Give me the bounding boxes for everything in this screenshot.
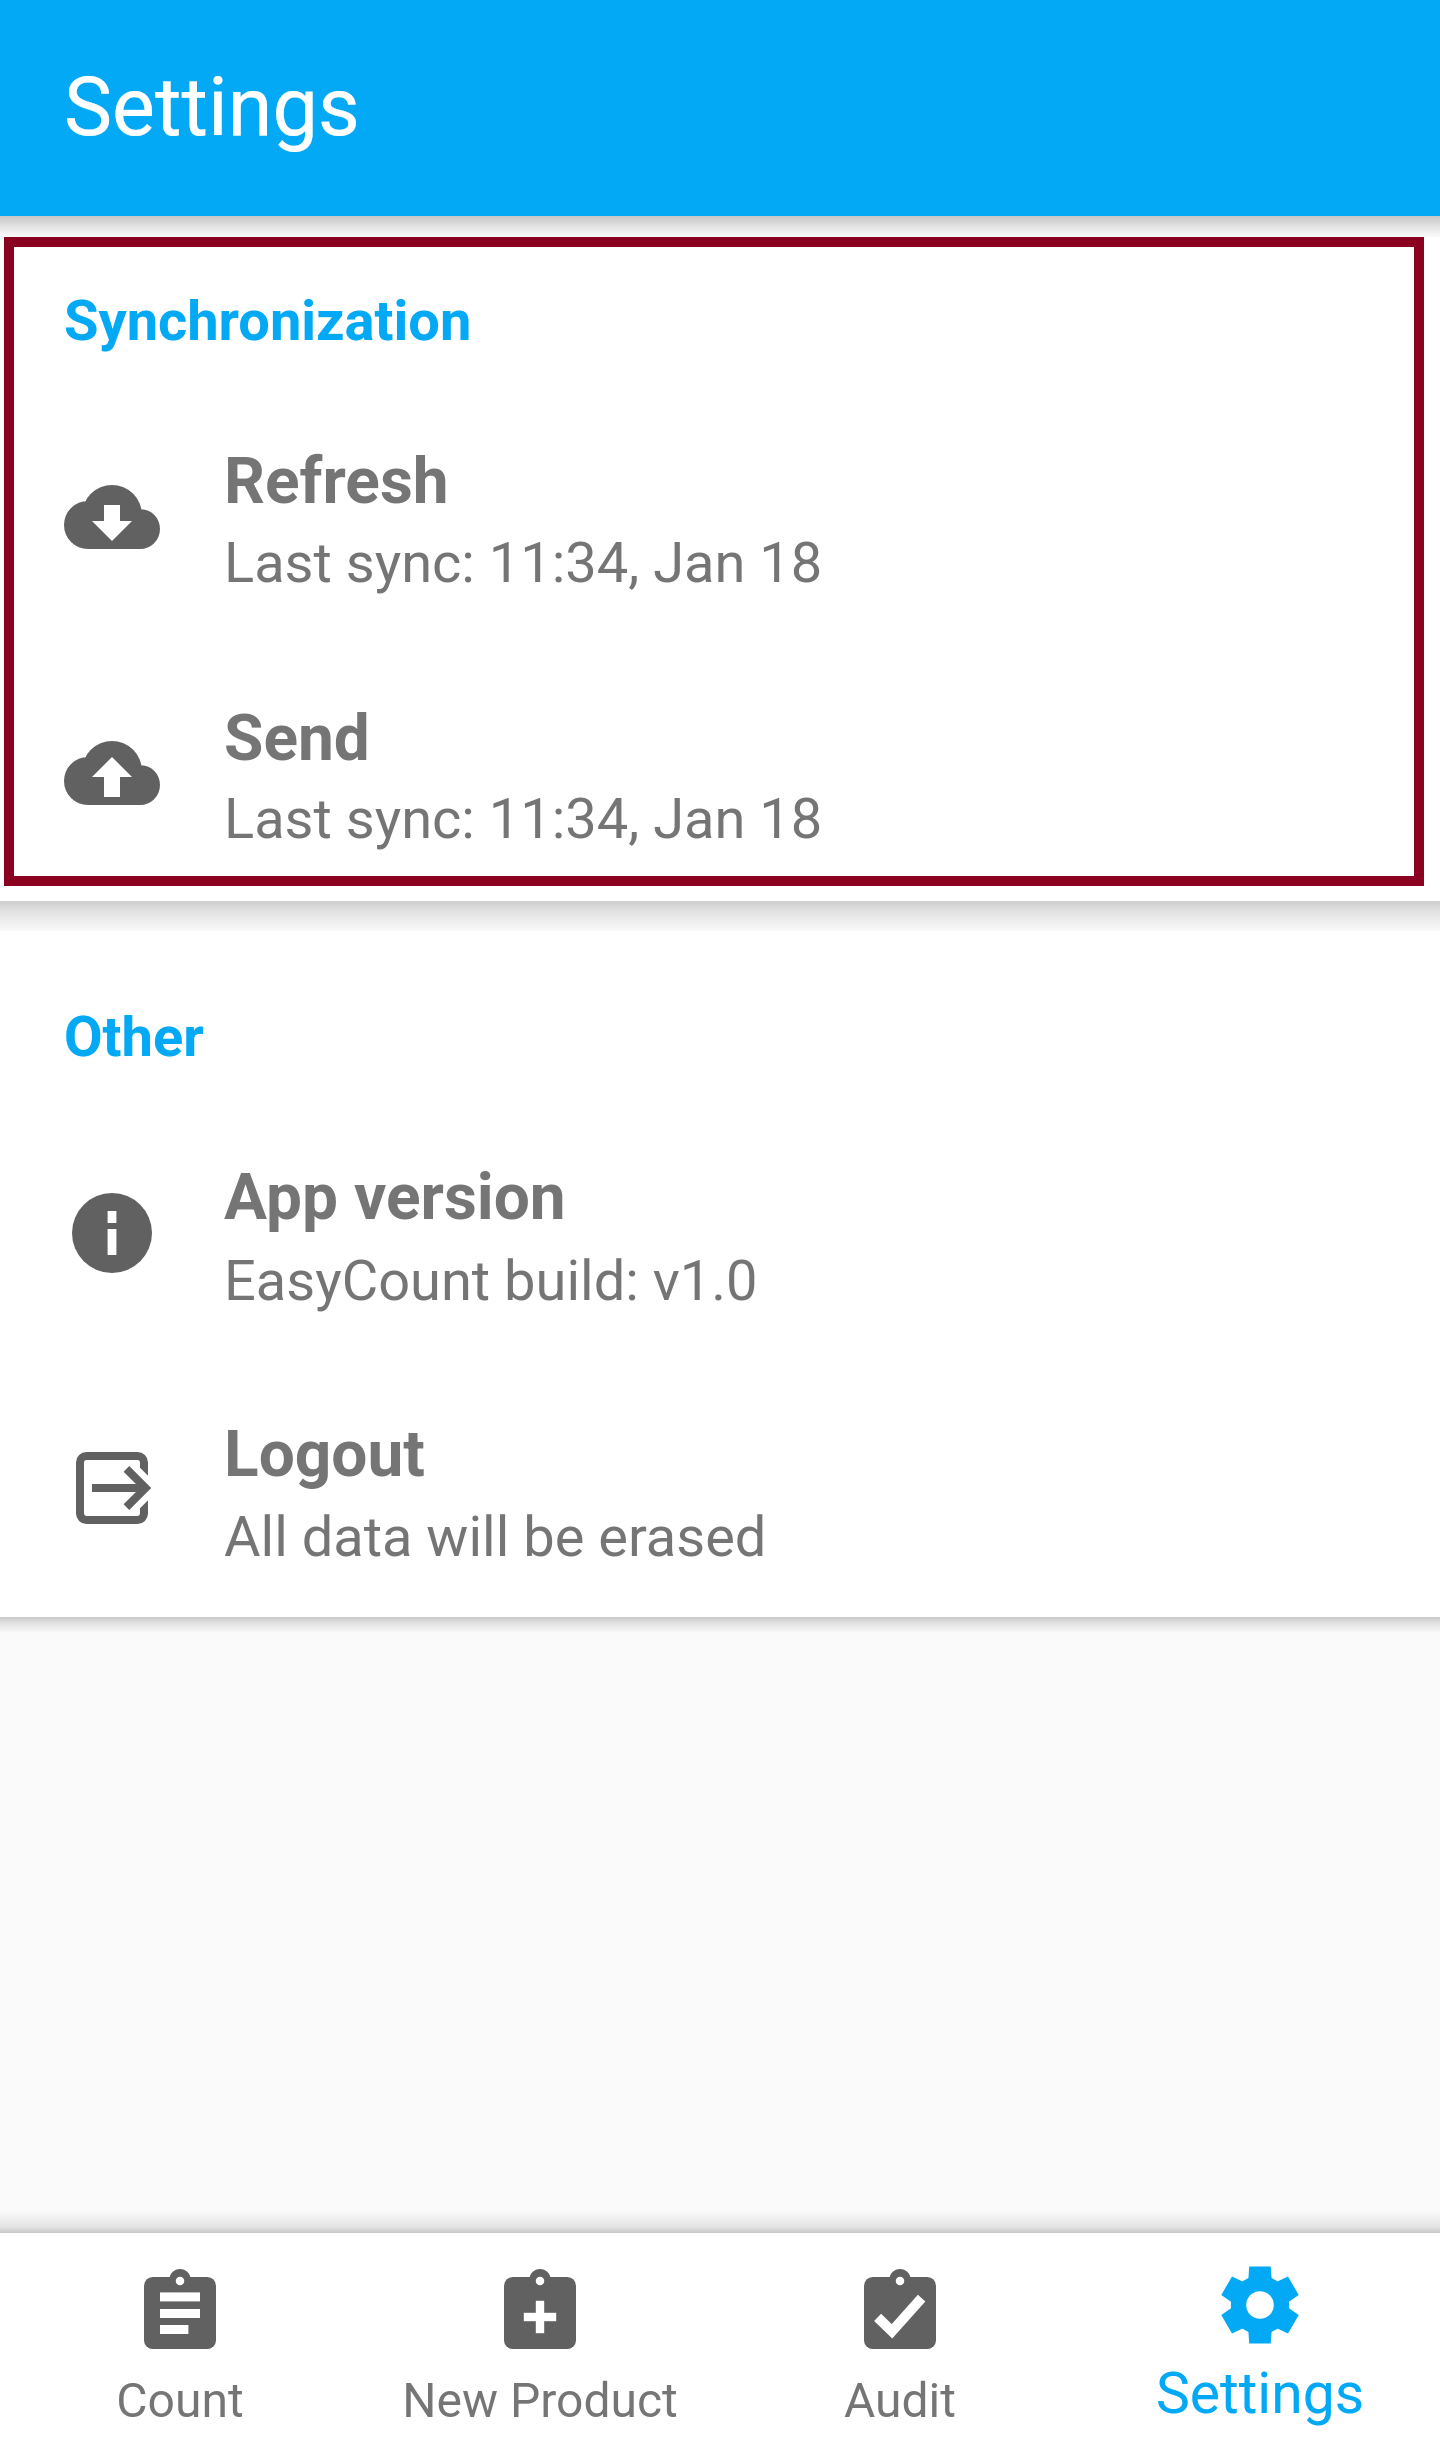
staticText: All data will be erased	[224, 1504, 767, 1570]
button[interactable]: Audit	[720, 2233, 1080, 2457]
button[interactable]: Logout	[0, 1398, 1440, 1578]
staticText: Last sync: 11:34, Jan 18	[224, 786, 823, 852]
staticText: Settings	[64, 60, 360, 155]
button[interactable]: Send	[0, 683, 1440, 863]
staticText: EasyCount build: v1.0	[224, 1248, 758, 1314]
staticText: App version	[224, 1160, 566, 1235]
button[interactable]: App version	[0, 1143, 1440, 1323]
button[interactable]: Settings	[1080, 2233, 1440, 2457]
staticText: Other	[64, 1004, 204, 1070]
button[interactable]: Refresh	[0, 427, 1440, 607]
button[interactable]: Count	[0, 2233, 360, 2457]
staticText: Synchronization	[64, 288, 472, 354]
staticText: Settings	[1080, 2360, 1440, 2427]
staticText: Refresh	[224, 444, 449, 519]
staticText: Send	[224, 701, 370, 776]
staticText: Last sync: 11:34, Jan 18	[224, 530, 823, 596]
staticText: Count	[0, 2372, 360, 2428]
staticText: New Product	[360, 2372, 720, 2428]
staticText: Logout	[224, 1417, 425, 1492]
staticText: Audit	[720, 2372, 1080, 2428]
button[interactable]: New Product	[360, 2233, 720, 2457]
